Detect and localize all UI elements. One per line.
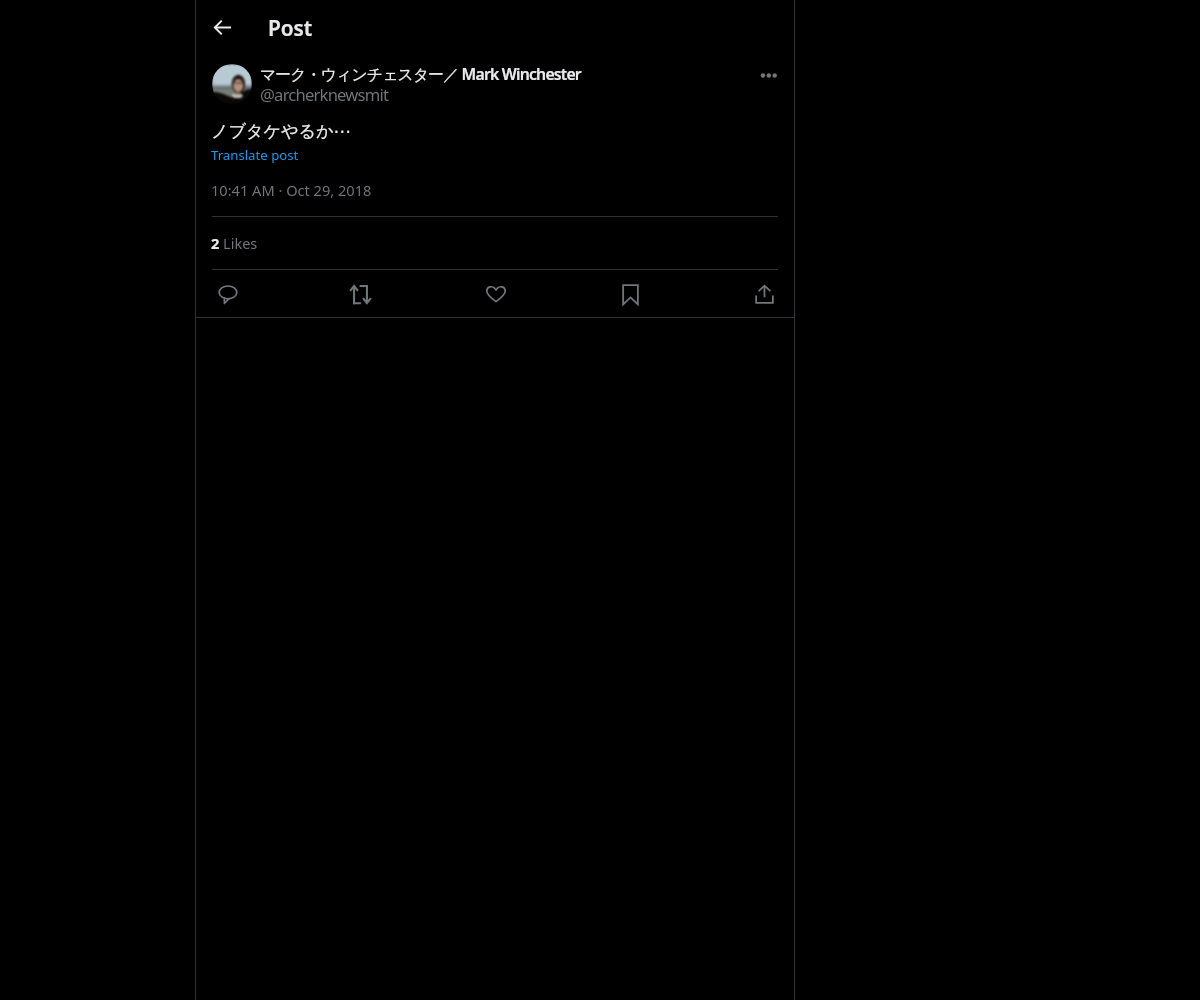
button[interactable]: Reply (206, 275, 246, 315)
button[interactable]: More options (747, 58, 781, 92)
button[interactable]: Repost (341, 275, 381, 315)
button[interactable]: Bookmark (610, 275, 650, 315)
button[interactable]: Share (744, 275, 784, 315)
button[interactable]: 2 Likes (211, 233, 258, 253)
staticText: マーク・ウィンチェスター／ Mark Winchester (260, 63, 581, 85)
button[interactable]: Translate post (211, 146, 299, 164)
staticText: Post (268, 14, 313, 42)
staticText: 10:41 AM · Oct 29, 2018 (211, 180, 372, 200)
button[interactable]: Profile photo (212, 64, 252, 104)
staticText: 2 Likes (211, 233, 258, 253)
staticText: Translate post (211, 146, 299, 164)
staticText: @archerknewsmit (260, 83, 389, 106)
staticText: ノブタケやるか⋯ (211, 121, 351, 143)
button[interactable]: Back (204, 9, 240, 45)
button[interactable]: Like (475, 275, 515, 315)
